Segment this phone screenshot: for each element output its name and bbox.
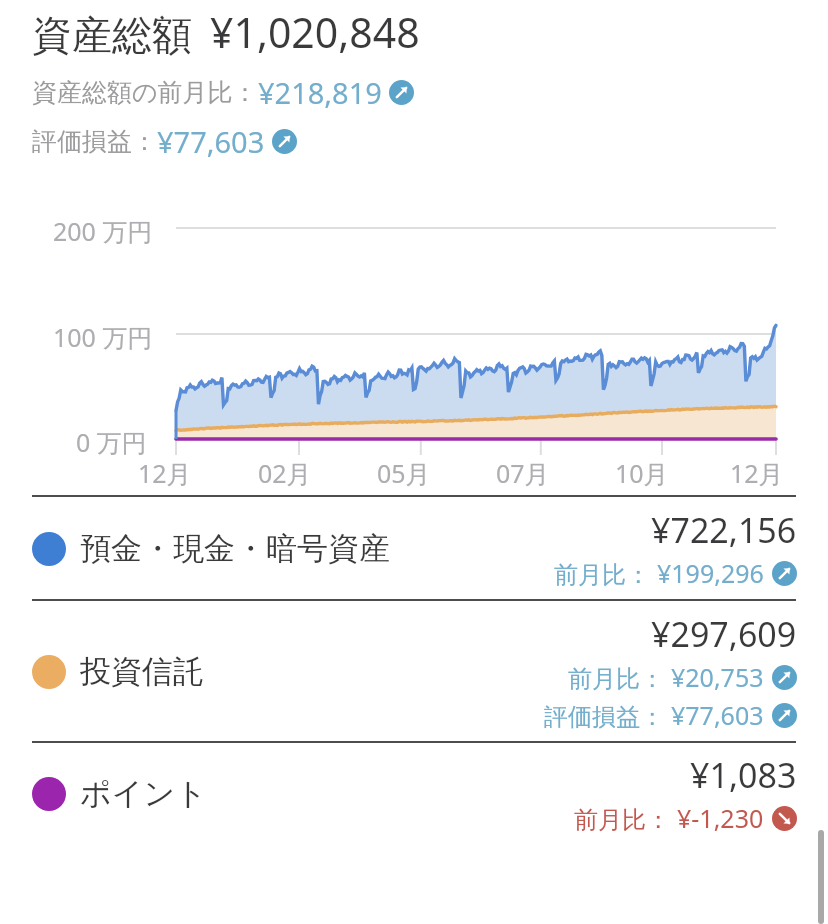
staticText: 前月比：	[574, 802, 677, 835]
button[interactable]: 前月比：	[568, 660, 797, 694]
staticText: 05月	[377, 456, 431, 488]
other: 増加	[772, 561, 797, 586]
staticText: 前月比：	[554, 557, 657, 590]
button[interactable]: 投資信託	[0, 601, 828, 741]
button[interactable]: 前月比：	[554, 556, 797, 590]
button[interactable]: 預金・現金・暗号資産	[0, 497, 828, 599]
staticText: ¥77,603	[157, 122, 265, 161]
staticText: 評価損益：	[32, 126, 157, 157]
staticText: ¥1,020,848	[210, 4, 420, 60]
staticText: 10月	[615, 456, 669, 488]
staticText: ¥1,083	[690, 752, 797, 798]
button[interactable]: ポイント	[0, 743, 828, 844]
button[interactable]: 資産総額	[32, 4, 420, 60]
staticText: ¥199,296	[657, 556, 764, 590]
staticText: 100 万円	[53, 320, 153, 354]
staticText: ポイント	[80, 774, 207, 813]
staticText: ¥218,819	[258, 73, 382, 112]
staticText: 0 万円	[76, 425, 147, 459]
button[interactable]: 評価損益：	[544, 698, 797, 732]
staticText: ¥20,753	[671, 660, 764, 694]
other: 増加	[272, 129, 297, 154]
staticText: 前月比：	[568, 661, 671, 694]
button[interactable]: 前月比：	[574, 801, 797, 835]
staticText: ¥-1,230	[677, 801, 764, 835]
staticText: 12月	[138, 456, 192, 488]
staticText: ¥722,156	[651, 507, 797, 553]
staticText: 12月	[730, 456, 784, 488]
staticText: 資産総額	[32, 10, 192, 60]
button[interactable]: 資産総額の前月比：	[32, 73, 414, 112]
button[interactable]: 評価損益：	[32, 122, 297, 161]
staticText: 預金・現金・暗号資産	[80, 529, 390, 568]
staticText: 評価損益：	[544, 699, 671, 732]
staticText: ¥297,609	[651, 611, 797, 657]
staticText: ¥77,603	[671, 698, 764, 732]
staticText: 200 万円	[53, 214, 153, 248]
staticText: 投資信託	[80, 652, 204, 691]
other: 増加	[389, 80, 414, 105]
other: 減少	[772, 806, 797, 831]
staticText: 07月	[496, 456, 550, 488]
staticText: 資産総額の前月比：	[32, 77, 258, 108]
other: 増加	[772, 665, 797, 690]
staticText: 02月	[258, 456, 312, 488]
other: 増加	[772, 703, 797, 728]
